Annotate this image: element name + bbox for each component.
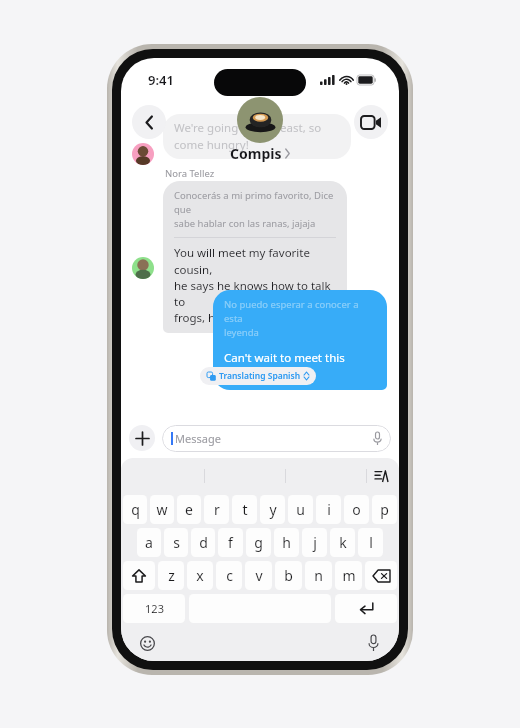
staticText: y [269,500,277,519]
button[interactable]: v [245,561,272,590]
button[interactable]: Formatting options [367,458,395,493]
button[interactable]: b [275,561,302,590]
staticText: n [314,566,323,585]
staticText: t [242,500,248,519]
button[interactable]: Message [162,425,391,452]
button[interactable]: Translating Spanish [200,367,316,385]
button[interactable]: k [330,528,355,557]
button[interactable]: m [335,561,362,590]
button[interactable]: w [150,495,174,524]
staticText: u [296,500,305,519]
button[interactable]: Shift [123,561,155,590]
staticText: z [168,566,175,585]
button[interactable]: l [358,528,383,557]
staticText: m [342,566,356,585]
staticText: l [369,533,373,552]
staticText: r [214,500,220,519]
button[interactable]: f [218,528,243,557]
staticText: s [173,533,180,552]
staticText: Conocerás a mi primo favorito, Dice que … [174,189,336,230]
staticText: e [185,500,193,519]
staticText: q [131,500,140,519]
staticText: Compis [230,144,282,163]
staticText: g [254,533,263,552]
button[interactable]: y [260,495,285,524]
button[interactable]: Add attachment [129,425,155,451]
button[interactable]: Conocerás a mi primo favorito, Dice que … [163,181,347,333]
staticText: w [156,500,168,519]
staticText: Translating Spanish [219,370,301,382]
button[interactable]: d [191,528,215,557]
button[interactable]: j [302,528,327,557]
button[interactable]: Return [335,594,397,623]
staticText: 123 [145,601,164,616]
button[interactable]: Backspace [365,561,397,590]
button[interactable]: i [316,495,341,524]
button[interactable]: z [158,561,184,590]
staticText: j [313,533,317,552]
button[interactable]: h [274,528,299,557]
button[interactable]: e [177,495,201,524]
staticText: We're going to the feast, so come hungry… [174,120,322,152]
button[interactable]: Dictation [362,632,384,654]
button[interactable]: Back [132,105,166,139]
button[interactable]: FaceTime video call [354,105,388,139]
staticText: c [226,566,233,585]
staticText: i [327,500,331,519]
staticText: d [199,533,208,552]
staticText: k [339,533,347,552]
button[interactable]: p [372,495,397,524]
button[interactable]: s [164,528,188,557]
button[interactable]: t [232,495,257,524]
staticText: x [196,566,204,585]
button[interactable]: x [187,561,213,590]
button[interactable]: r [204,495,229,524]
staticText: v [255,566,263,585]
staticText: You will meet my favorite cousin, he say… [174,245,336,325]
button[interactable]: 123 [123,594,185,623]
button[interactable]: No puedo esperar a conocer a esta leyend… [213,290,387,390]
staticText: b [284,566,293,585]
staticText: Can't wait to meet this legend [224,350,376,382]
button[interactable]: q [123,495,147,524]
staticText: a [145,533,153,552]
button[interactable]: u [288,495,313,524]
button[interactable]: Emoji keyboard [136,632,158,654]
button[interactable]: Compis [230,97,290,163]
staticText: Nora Tellez [165,167,215,180]
button[interactable]: a [137,528,161,557]
button[interactable]: n [305,561,332,590]
staticText: 9:41 [148,71,174,89]
staticText: Message [175,431,221,446]
staticText: h [282,533,291,552]
button[interactable]: g [246,528,271,557]
staticText: p [380,500,389,519]
staticText: o [352,500,361,519]
staticText: f [228,533,233,552]
staticText: No puedo esperar a conocer a esta leyend… [224,298,376,339]
button[interactable]: o [344,495,369,524]
button[interactable]: c [216,561,242,590]
